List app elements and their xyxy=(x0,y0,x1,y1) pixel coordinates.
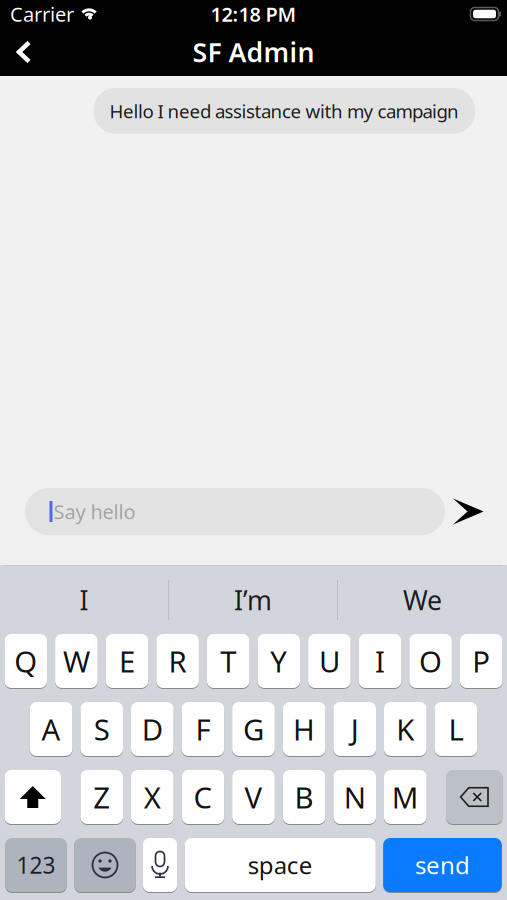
staticText: Y xyxy=(270,641,287,680)
button[interactable]: Send xyxy=(449,488,487,534)
staticText: send xyxy=(415,849,470,881)
staticText: X xyxy=(144,777,161,816)
button[interactable]: Emoji xyxy=(74,838,136,892)
staticText: R xyxy=(169,641,187,680)
button[interactable]: I xyxy=(359,634,401,688)
staticText: space xyxy=(248,849,313,881)
button[interactable]: N xyxy=(333,770,376,824)
button[interactable]: J xyxy=(333,702,376,756)
staticText: T xyxy=(220,641,236,680)
button[interactable]: T xyxy=(207,634,249,688)
staticText: V xyxy=(244,777,262,816)
button[interactable]: Dictate xyxy=(143,838,177,892)
staticText: Hello I need assistance with my campaign xyxy=(109,98,459,123)
button[interactable]: Back xyxy=(4,32,44,72)
staticText: H xyxy=(293,709,315,748)
button[interactable]: L xyxy=(435,702,477,756)
button[interactable]: We xyxy=(338,578,507,622)
staticText: G xyxy=(243,709,264,748)
button[interactable]: I xyxy=(0,578,168,622)
button[interactable]: C xyxy=(182,770,224,824)
staticText: P xyxy=(472,641,490,680)
button[interactable]: H xyxy=(283,702,325,756)
button[interactable]: B xyxy=(283,770,325,824)
button[interactable]: U xyxy=(308,634,351,688)
button[interactable]: 123 xyxy=(5,838,67,892)
button[interactable]: space xyxy=(185,838,376,892)
button[interactable]: A xyxy=(30,702,72,756)
button[interactable]: M xyxy=(384,770,427,824)
staticText: 12:18 PM xyxy=(210,1,296,27)
staticText: N xyxy=(344,777,366,816)
staticText: B xyxy=(295,777,314,816)
staticText: E xyxy=(119,641,135,680)
staticText: I’m xyxy=(234,582,272,618)
staticText: SF Admin xyxy=(192,34,314,70)
button[interactable]: D xyxy=(131,702,174,756)
staticText: J xyxy=(351,709,359,748)
staticText: I xyxy=(79,582,88,618)
button[interactable]: send xyxy=(383,838,502,892)
button[interactable]: X xyxy=(131,770,174,824)
staticText: Z xyxy=(93,777,110,816)
staticText: L xyxy=(448,709,463,748)
staticText: F xyxy=(195,709,210,748)
button[interactable]: V xyxy=(232,770,275,824)
button[interactable]: Shift xyxy=(4,770,61,824)
staticText: Carrier xyxy=(10,1,74,27)
button[interactable]: P xyxy=(460,634,502,688)
staticText: U xyxy=(319,641,340,680)
staticText: A xyxy=(42,709,61,748)
staticText: S xyxy=(94,709,110,748)
staticText: I xyxy=(375,641,385,680)
staticText: M xyxy=(392,777,419,816)
button[interactable]: W xyxy=(55,634,98,688)
staticText: Say hello xyxy=(53,498,135,525)
staticText: W xyxy=(63,641,90,680)
button[interactable]: K xyxy=(384,702,427,756)
button[interactable]: R xyxy=(156,634,199,688)
staticText: K xyxy=(396,709,414,748)
button[interactable]: E xyxy=(106,634,148,688)
staticText: 123 xyxy=(16,850,55,880)
button[interactable]: Z xyxy=(80,770,123,824)
button[interactable]: Q xyxy=(4,634,47,688)
button[interactable]: F xyxy=(182,702,224,756)
button[interactable]: S xyxy=(80,702,123,756)
staticText: Q xyxy=(14,641,37,680)
staticText: D xyxy=(142,709,163,748)
staticText: We xyxy=(403,582,442,618)
button[interactable]: I’m xyxy=(169,578,337,622)
button[interactable]: G xyxy=(232,702,275,756)
button[interactable]: O xyxy=(409,634,452,688)
staticText: O xyxy=(419,641,442,680)
button[interactable]: Delete xyxy=(446,770,502,824)
staticText: C xyxy=(193,777,212,816)
button[interactable]: Y xyxy=(257,634,300,688)
